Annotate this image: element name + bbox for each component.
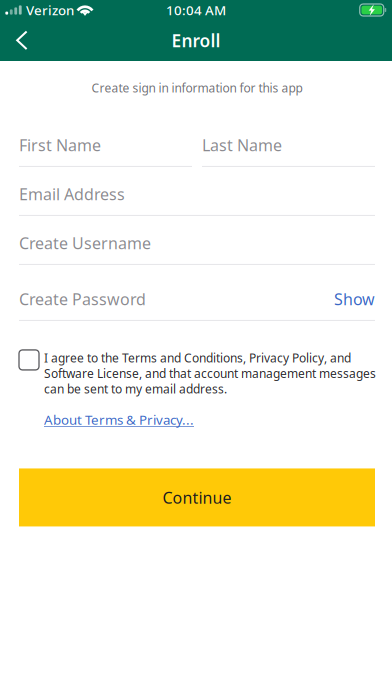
staticText: Continue xyxy=(162,487,231,508)
staticText: Create Password xyxy=(19,288,146,309)
staticText: Last Name xyxy=(202,134,282,155)
staticText: Enroll xyxy=(171,29,220,52)
button[interactable]: Show xyxy=(334,288,375,309)
staticText: Create Username xyxy=(19,232,151,253)
staticText: can be sent to my email address. xyxy=(44,381,227,397)
staticText: Show xyxy=(334,288,375,309)
staticText: First Name xyxy=(19,134,101,155)
button[interactable]: About Terms & Privacy... xyxy=(19,411,375,428)
staticText: Software License, and that account manag… xyxy=(44,365,376,381)
button[interactable]: Back xyxy=(0,20,44,61)
staticText: Create sign in information for this app xyxy=(91,80,302,96)
staticText: Verizon xyxy=(26,1,74,19)
staticText: Email Address xyxy=(19,183,125,204)
staticText: About Terms & Privacy... xyxy=(44,411,194,428)
button[interactable]: Continue xyxy=(19,468,375,526)
staticText: I agree to the Terms and Conditions, Pri… xyxy=(44,350,351,366)
button[interactable]: I agree to the Terms and Conditions, Pri… xyxy=(18,350,376,397)
staticText: 10:04 AM xyxy=(166,1,226,19)
